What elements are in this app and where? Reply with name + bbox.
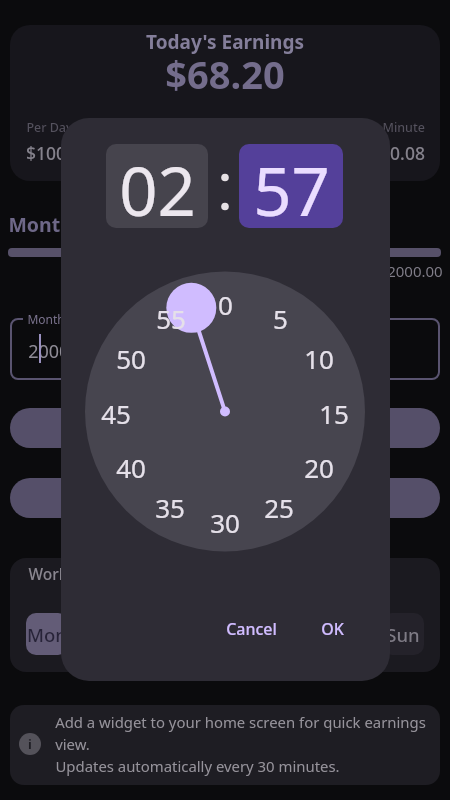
button[interactable]: Thu xyxy=(204,613,246,655)
staticText: $100.00 xyxy=(26,141,91,165)
staticText: Mon xyxy=(27,622,67,647)
staticText: Thu xyxy=(208,622,242,647)
staticText: 0 xyxy=(218,287,233,319)
staticText: i xyxy=(28,735,32,753)
staticText: 5 xyxy=(273,301,288,333)
button[interactable]: 57 xyxy=(239,144,343,228)
staticText: Fri xyxy=(273,622,296,647)
staticText: 02 xyxy=(119,144,196,228)
staticText: Monthly goal xyxy=(27,311,102,327)
staticText: $0.08 xyxy=(380,141,425,165)
button[interactable] xyxy=(10,408,440,448)
button[interactable]: Fri xyxy=(263,613,305,655)
button[interactable]: OK xyxy=(302,615,362,643)
staticText: Sun xyxy=(386,622,420,647)
staticText: Per Day xyxy=(26,119,73,136)
staticText: 25 xyxy=(264,490,294,522)
button[interactable]: Sat xyxy=(323,613,365,655)
staticText: 40 xyxy=(116,450,146,482)
staticText: Work days xyxy=(28,563,106,584)
staticText: OK xyxy=(321,618,344,640)
staticText: Today's Earnings xyxy=(146,29,304,55)
staticText: Cancel xyxy=(226,618,277,640)
button[interactable]: 02 xyxy=(106,144,208,228)
staticText: Add a widget to your home screen for qui… xyxy=(55,712,426,732)
button[interactable]: Sun xyxy=(382,613,424,655)
staticText: 57 xyxy=(253,144,330,228)
staticText: 45 xyxy=(101,396,131,428)
staticText: 55 xyxy=(156,301,186,333)
staticText: 2000.00 xyxy=(28,339,95,364)
staticText: $68.20 / $2000.00 xyxy=(318,261,443,281)
button[interactable]: Cancel xyxy=(211,615,291,643)
staticText: Updates automatically every 30 minutes. xyxy=(55,756,340,776)
button[interactable] xyxy=(10,318,440,380)
staticText: Sat xyxy=(330,622,358,647)
staticText: 10 xyxy=(304,341,334,373)
staticText: 30 xyxy=(210,505,240,537)
button[interactable] xyxy=(10,478,440,518)
staticText: 50 xyxy=(116,341,146,373)
staticText: 20 xyxy=(304,450,334,482)
staticText: Per Minute xyxy=(359,119,425,136)
staticText: $68.20 xyxy=(165,48,285,100)
staticText: 15 xyxy=(319,396,349,428)
staticText: view. xyxy=(55,734,90,754)
staticText: Monthly Goal xyxy=(8,211,139,238)
button[interactable]: Mon xyxy=(26,613,68,655)
staticText: 35 xyxy=(155,490,185,522)
